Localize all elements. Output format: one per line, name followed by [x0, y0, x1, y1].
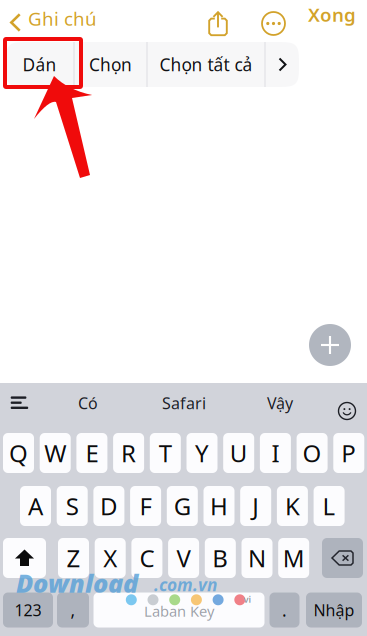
staticText: W — [44, 437, 66, 469]
button[interactable]: Ghi chú — [0, 0, 100, 40]
staticText: J — [252, 490, 259, 522]
staticText: B — [212, 542, 228, 574]
staticText: K — [285, 490, 300, 522]
staticText: Laban Key — [144, 601, 214, 621]
staticText: 123 — [14, 599, 41, 621]
button[interactable]: T — [150, 433, 181, 473]
button[interactable]: I — [260, 433, 291, 473]
button[interactable]: Space — [93, 592, 264, 627]
staticText: S — [66, 490, 79, 522]
button[interactable]: Emoji — [330, 394, 363, 427]
staticText: .com.vn — [154, 573, 217, 596]
button[interactable]: Vậy — [248, 389, 312, 417]
staticText: Có — [78, 392, 98, 414]
staticText: H — [210, 490, 228, 522]
button[interactable]: Keyboard menu — [2, 387, 39, 418]
button[interactable]: X — [95, 538, 126, 578]
staticText: L — [323, 490, 336, 522]
button[interactable]: . — [269, 592, 299, 627]
button[interactable]: V — [168, 538, 199, 578]
button[interactable]: Shift — [3, 538, 46, 578]
staticText: O — [303, 437, 322, 469]
button[interactable]: L — [314, 486, 345, 526]
button[interactable]: More — [253, 3, 294, 44]
staticText: Xong — [308, 2, 356, 27]
staticText: Q — [9, 437, 28, 469]
staticText: D — [100, 490, 118, 522]
staticText: V — [177, 542, 191, 574]
staticText: Dán — [22, 53, 56, 76]
button[interactable]: Nhập — [306, 592, 362, 627]
button[interactable]: Chọn — [74, 42, 146, 87]
button[interactable]: H — [203, 486, 234, 526]
staticText: R — [121, 437, 136, 469]
button[interactable]: M — [278, 538, 309, 578]
staticText: Chọn tất cả — [159, 53, 252, 76]
button[interactable]: S — [57, 486, 88, 526]
button[interactable]: B — [205, 538, 236, 578]
staticText: E — [85, 437, 98, 469]
staticText: T — [159, 437, 172, 469]
staticText: P — [341, 437, 356, 469]
staticText: Download — [16, 566, 138, 600]
staticText: , — [70, 598, 75, 621]
button[interactable]: J — [240, 486, 271, 526]
button[interactable]: Y — [186, 433, 217, 473]
button[interactable]: Chọn tất cả — [147, 42, 264, 87]
button[interactable]: Dán — [5, 42, 73, 87]
staticText: Vậy — [267, 392, 293, 414]
button[interactable]: N — [241, 538, 272, 578]
staticText: Ghi chú — [28, 6, 97, 31]
button[interactable]: W — [40, 433, 71, 473]
staticText: M — [283, 542, 305, 574]
button[interactable]: Add — [309, 324, 351, 366]
button[interactable]: U — [223, 433, 254, 473]
button[interactable]: O — [297, 433, 328, 473]
staticText: U — [230, 437, 248, 469]
button[interactable]: , — [57, 592, 89, 627]
staticText: I — [271, 437, 279, 469]
staticText: Safari — [162, 392, 206, 414]
button[interactable]: Có — [56, 389, 120, 417]
staticText: Z — [66, 542, 80, 574]
button[interactable]: E — [76, 433, 107, 473]
button[interactable]: A — [20, 486, 51, 526]
button[interactable]: R — [113, 433, 144, 473]
staticText: F — [140, 490, 152, 522]
button[interactable]: D — [93, 486, 124, 526]
button[interactable]: Delete — [322, 538, 363, 578]
button[interactable]: P — [333, 433, 364, 473]
button[interactable]: More options — [265, 42, 299, 87]
button[interactable]: Xong — [299, 0, 365, 35]
staticText: X — [103, 542, 117, 574]
staticText: C — [139, 542, 154, 574]
button[interactable]: 123 — [3, 592, 53, 627]
staticText: Chọn — [89, 53, 132, 76]
button[interactable]: Safari — [148, 389, 220, 417]
button[interactable]: C — [131, 538, 162, 578]
staticText: Nhập — [313, 599, 354, 621]
staticText: . — [282, 598, 287, 621]
staticText: G — [174, 490, 191, 522]
staticText: vi — [243, 593, 251, 605]
button[interactable]: F — [130, 486, 161, 526]
button[interactable]: K — [277, 486, 308, 526]
button[interactable]: Q — [3, 433, 34, 473]
button[interactable]: Share — [201, 3, 235, 43]
button[interactable]: Z — [58, 538, 89, 578]
button[interactable]: G — [167, 486, 198, 526]
staticText: Y — [195, 437, 209, 469]
staticText: A — [28, 490, 43, 522]
staticText: N — [248, 542, 266, 574]
